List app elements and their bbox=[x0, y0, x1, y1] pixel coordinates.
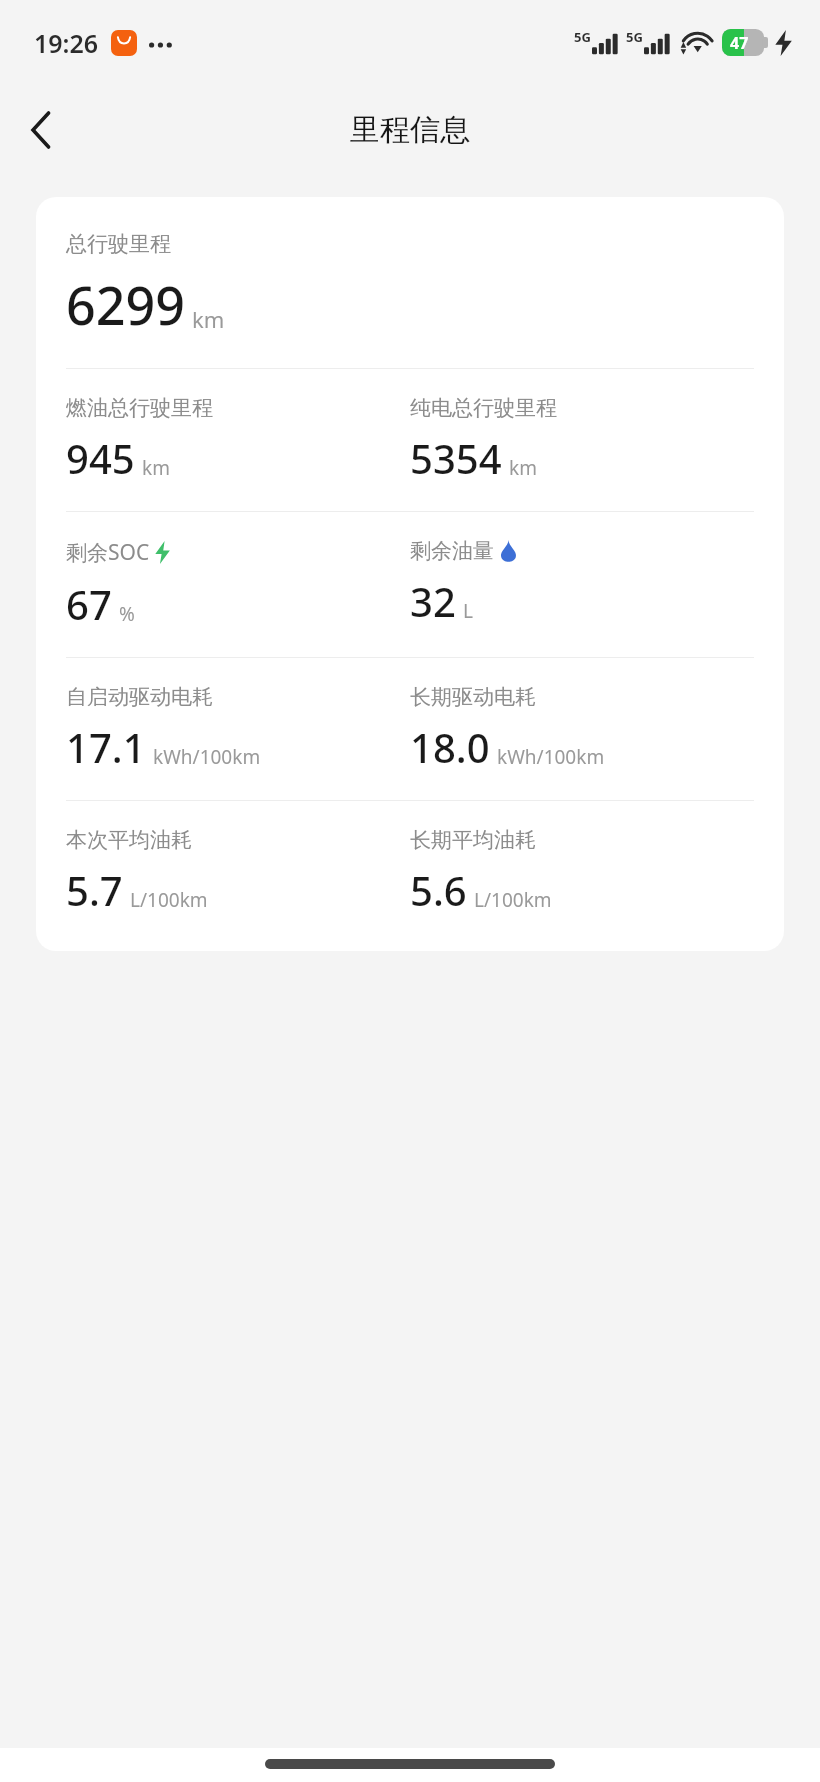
staticText: 本次平均油耗 bbox=[66, 827, 192, 853]
staticText: 长期驱动电耗 bbox=[410, 684, 536, 710]
staticText: kWh/100km bbox=[153, 744, 261, 770]
staticText: 自启动驱动电耗 bbox=[66, 684, 213, 710]
staticText: 5G bbox=[626, 28, 643, 46]
staticText: L/100km bbox=[474, 887, 552, 913]
staticText: 5354 bbox=[410, 431, 502, 485]
staticText: km bbox=[192, 304, 225, 334]
staticText: 32 bbox=[410, 574, 456, 628]
staticText: km bbox=[142, 455, 170, 481]
staticText: % bbox=[119, 601, 135, 627]
staticText: 47 bbox=[730, 32, 749, 54]
staticText: 19:26 bbox=[34, 26, 99, 60]
staticText: 纯电总行驶里程 bbox=[410, 395, 557, 421]
staticText: 5.7 bbox=[66, 863, 123, 917]
staticText: 燃油总行驶里程 bbox=[66, 395, 213, 421]
staticText: 6299 bbox=[66, 269, 185, 340]
staticText: kWh/100km bbox=[497, 744, 605, 770]
staticText: L bbox=[463, 598, 473, 624]
staticText: 长期平均油耗 bbox=[410, 827, 536, 853]
staticText: 剩余SOC bbox=[66, 538, 150, 567]
staticText: 5G bbox=[574, 28, 591, 46]
staticText: km bbox=[509, 455, 537, 481]
staticText: 67 bbox=[66, 577, 112, 631]
staticText: 总行驶里程 bbox=[66, 231, 171, 257]
staticText: 5.6 bbox=[410, 863, 467, 917]
staticText: 里程信息 bbox=[350, 111, 470, 149]
staticText: 18.0 bbox=[410, 720, 490, 774]
staticText: L/100km bbox=[130, 887, 208, 913]
staticText: 945 bbox=[66, 431, 135, 485]
staticText: 17.1 bbox=[66, 720, 146, 774]
staticText: 剩余油量 bbox=[410, 538, 494, 564]
button[interactable]: 返回 bbox=[12, 101, 70, 159]
